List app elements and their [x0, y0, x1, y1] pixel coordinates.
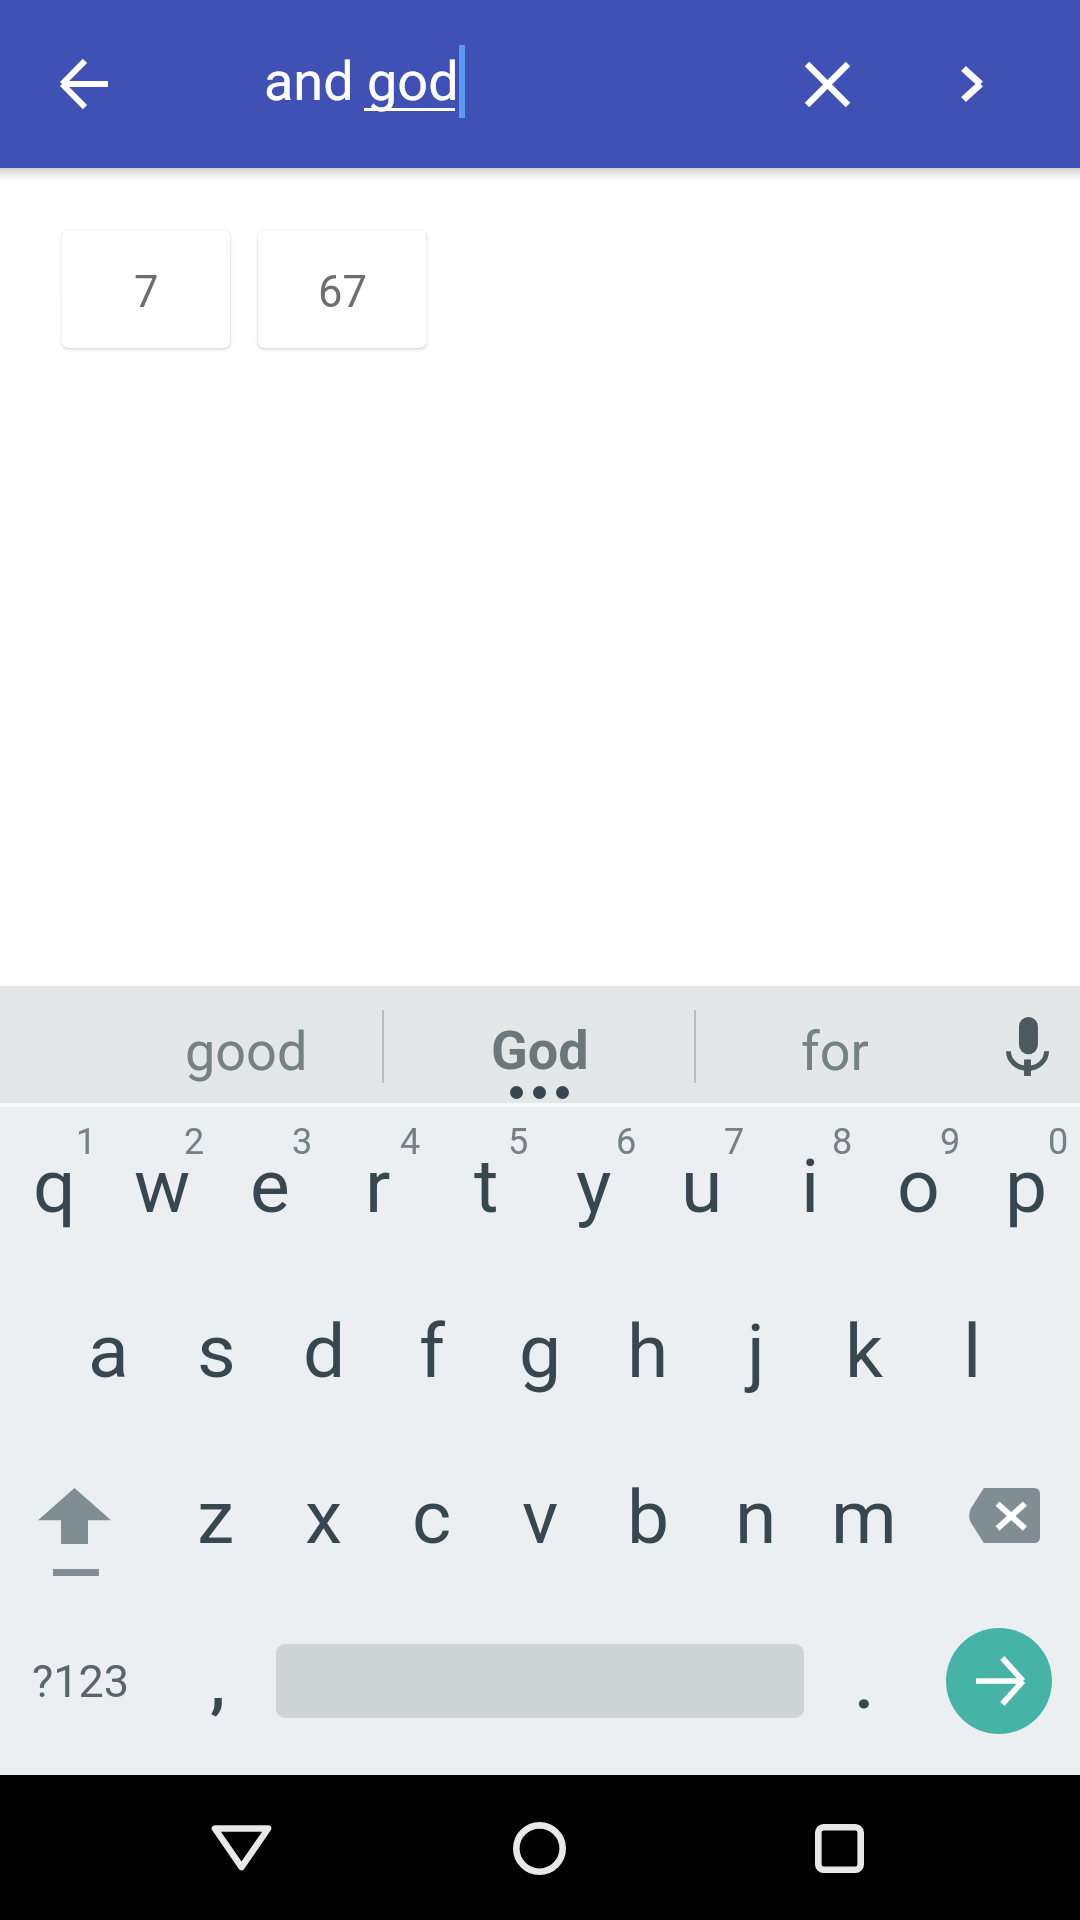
staticText: 1: [76, 1121, 97, 1163]
staticText: 3: [292, 1121, 313, 1163]
button[interactable]: Enter: [918, 1608, 1080, 1775]
staticText: good: [185, 1020, 308, 1083]
button[interactable]: ?123: [0, 1608, 162, 1775]
button[interactable]: ,: [162, 1608, 270, 1775]
button[interactable]: l: [918, 1274, 1026, 1441]
button[interactable]: 3: [216, 1107, 324, 1274]
staticText: k: [845, 1307, 884, 1395]
staticText: g: [519, 1307, 562, 1395]
staticText: a: [88, 1307, 129, 1395]
button[interactable]: Recent apps: [767, 1776, 911, 1920]
button[interactable]: Home: [467, 1776, 611, 1920]
staticText: ?123: [32, 1655, 130, 1708]
staticText: b: [627, 1473, 670, 1561]
button[interactable]: s: [162, 1274, 270, 1441]
staticText: 0: [1048, 1121, 1069, 1163]
button[interactable]: 5: [432, 1107, 540, 1274]
button[interactable]: Back: [169, 1776, 313, 1920]
staticText: i: [801, 1142, 820, 1230]
staticText: y: [576, 1142, 612, 1230]
button[interactable]: a: [54, 1274, 162, 1441]
button[interactable]: z: [162, 1441, 270, 1608]
staticText: l: [963, 1307, 982, 1395]
button[interactable]: c: [378, 1441, 486, 1608]
button[interactable]: h: [594, 1274, 702, 1441]
staticText: o: [897, 1142, 940, 1230]
button[interactable]: 4: [324, 1107, 432, 1274]
staticText: s: [197, 1307, 236, 1395]
staticText: 7: [724, 1121, 745, 1163]
button[interactable]: m: [810, 1441, 918, 1608]
staticText: h: [627, 1307, 669, 1395]
button[interactable]: n: [702, 1441, 810, 1608]
staticText: p: [1005, 1142, 1048, 1230]
staticText: 6: [616, 1121, 637, 1163]
staticText: t: [474, 1142, 499, 1230]
button[interactable]: 0: [972, 1107, 1080, 1274]
button[interactable]: d: [270, 1274, 378, 1441]
button[interactable]: x: [270, 1441, 378, 1608]
button[interactable]: good: [0, 986, 383, 1107]
staticText: f: [419, 1307, 446, 1395]
button[interactable]: .: [810, 1608, 918, 1775]
staticText: 9: [940, 1121, 961, 1163]
button[interactable]: Next result: [900, 12, 1044, 156]
staticText: ,: [210, 1648, 226, 1722]
staticText: n: [735, 1473, 777, 1561]
button[interactable]: f: [378, 1274, 486, 1441]
button[interactable]: v: [486, 1441, 594, 1608]
staticText: x: [305, 1473, 343, 1561]
button[interactable]: Clear query: [755, 12, 899, 156]
button[interactable]: Delete: [918, 1441, 1080, 1608]
button[interactable]: Navigate up: [12, 12, 156, 156]
staticText: r: [365, 1142, 391, 1230]
button[interactable]: 7: [648, 1107, 756, 1274]
button[interactable]: 8: [756, 1107, 864, 1274]
button[interactable]: 2: [108, 1107, 216, 1274]
button[interactable]: j: [702, 1274, 810, 1441]
button[interactable]: 9: [864, 1107, 972, 1274]
staticText: u: [681, 1142, 723, 1230]
staticText: 8: [832, 1121, 853, 1163]
staticText: God: [491, 1019, 589, 1082]
staticText: for: [801, 1020, 869, 1083]
staticText: c: [412, 1473, 452, 1561]
button[interactable]: for: [695, 986, 975, 1107]
staticText: j: [747, 1307, 765, 1395]
staticText: 4: [400, 1121, 421, 1163]
button[interactable]: 6: [540, 1107, 648, 1274]
staticText: z: [197, 1473, 235, 1561]
button[interactable]: 7: [62, 230, 230, 348]
button[interactable]: Shift: [0, 1441, 162, 1608]
staticText: e: [250, 1142, 290, 1230]
button[interactable]: 67: [258, 230, 426, 348]
staticText: v: [522, 1473, 559, 1561]
staticText: 67: [318, 267, 367, 318]
staticText: and god: [264, 50, 459, 113]
staticText: .: [855, 1650, 874, 1724]
staticText: 5: [508, 1121, 529, 1163]
staticText: q: [33, 1142, 76, 1230]
staticText: 7: [134, 267, 159, 318]
button[interactable]: Voice input: [975, 986, 1080, 1107]
button[interactable]: [270, 1608, 810, 1775]
button[interactable]: k: [810, 1274, 918, 1441]
button[interactable]: b: [594, 1441, 702, 1608]
staticText: d: [303, 1307, 346, 1395]
staticText: 2: [184, 1121, 205, 1163]
staticText: w: [134, 1142, 191, 1230]
button[interactable]: 1: [0, 1107, 108, 1274]
button[interactable]: g: [486, 1274, 594, 1441]
staticText: m: [831, 1473, 897, 1561]
button[interactable]: God: [383, 986, 696, 1107]
